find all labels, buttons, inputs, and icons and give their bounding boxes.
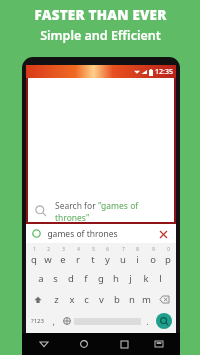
- staticText: n: [129, 293, 135, 306]
- staticText: l: [159, 272, 162, 285]
- staticText: e: [60, 253, 66, 266]
- staticText: b: [114, 293, 120, 306]
- button[interactable]: .: [141, 310, 153, 332]
- button[interactable]: d: [63, 268, 78, 289]
- staticText: Simple and Efficient: [40, 27, 161, 44]
- button[interactable]: v: [94, 289, 109, 310]
- staticText: .: [146, 316, 149, 327]
- staticText: 8: [136, 246, 139, 252]
- button[interactable]: 4: [70, 244, 85, 268]
- button[interactable]: g: [93, 268, 108, 289]
- staticText: v: [99, 293, 104, 306]
- button[interactable]: 6: [100, 244, 115, 268]
- staticText: x: [69, 293, 75, 306]
- button[interactable]: z: [49, 289, 64, 310]
- button[interactable]: Home: [73, 333, 95, 355]
- staticText: 0: [167, 246, 170, 252]
- staticText: y: [105, 253, 110, 266]
- staticText: 12:35: [155, 67, 173, 77]
- staticText: 3: [62, 246, 65, 252]
- staticText: q: [31, 253, 37, 266]
- staticText: t: [91, 253, 95, 266]
- button[interactable]: 2: [41, 244, 55, 268]
- staticText: m: [142, 293, 151, 306]
- staticText: 7: [122, 246, 125, 252]
- staticText: 2: [47, 246, 50, 252]
- staticText: FASTER THAN EVER: [34, 6, 167, 24]
- staticText: j: [129, 272, 132, 285]
- button[interactable]: j: [123, 268, 138, 289]
- button[interactable]: f: [78, 268, 93, 289]
- staticText: k: [143, 272, 149, 285]
- button[interactable]: 1: [27, 244, 41, 268]
- staticText: 9: [152, 246, 155, 252]
- staticText: d: [68, 272, 74, 285]
- staticText: ?123: [31, 317, 44, 325]
- button[interactable]: Search for "games of thrones": [28, 200, 174, 222]
- button[interactable]: n: [124, 289, 139, 310]
- button[interactable]: Back: [33, 333, 55, 355]
- button[interactable]: c: [79, 289, 94, 310]
- staticText: s: [53, 272, 58, 285]
- staticText: w: [44, 253, 52, 266]
- staticText: 6: [106, 246, 109, 252]
- staticText: z: [54, 293, 59, 306]
- staticText: a: [38, 272, 44, 285]
- button[interactable]: x: [64, 289, 79, 310]
- button[interactable]: Hide keyboard: [148, 333, 170, 355]
- button[interactable]: Shift: [27, 289, 49, 310]
- button[interactable]: games of thrones: [26, 224, 176, 243]
- staticText: f: [84, 272, 88, 285]
- button[interactable]: 7: [115, 244, 130, 268]
- button[interactable]: 3: [55, 244, 70, 268]
- staticText: 5: [92, 246, 95, 252]
- button[interactable]: Recent apps: [113, 333, 135, 355]
- button[interactable]: b: [109, 289, 124, 310]
- button[interactable]: Change language: [59, 310, 74, 332]
- button[interactable]: s: [48, 268, 63, 289]
- staticText: games of thrones: [47, 228, 118, 240]
- staticText: u: [120, 253, 126, 266]
- staticText: ,: [52, 316, 55, 327]
- button[interactable]: h: [108, 268, 123, 289]
- button[interactable]: 9: [145, 244, 160, 268]
- staticText: g: [98, 272, 104, 285]
- staticText: Search for "games of thrones": [55, 200, 174, 222]
- button[interactable]: 0: [160, 244, 175, 268]
- button[interactable]: k: [138, 268, 153, 289]
- staticText: h: [113, 272, 119, 285]
- button[interactable]: 5: [85, 244, 100, 268]
- staticText: p: [165, 253, 171, 266]
- button[interactable]: Clear query: [156, 227, 170, 241]
- staticText: c: [84, 293, 89, 306]
- button[interactable]: ,: [48, 310, 59, 332]
- button[interactable]: l: [153, 268, 168, 289]
- button[interactable]: Search: [156, 313, 172, 329]
- button[interactable]: ?123: [27, 310, 48, 332]
- staticText: 4: [77, 246, 80, 252]
- button[interactable]: Backspace: [154, 289, 175, 310]
- button[interactable]: a: [33, 268, 48, 289]
- staticText: 1: [33, 246, 36, 252]
- staticText: r: [76, 253, 80, 266]
- staticText: i: [136, 253, 139, 266]
- staticText: o: [150, 253, 156, 266]
- button[interactable]: 8: [130, 244, 145, 268]
- button[interactable]: m: [139, 289, 154, 310]
